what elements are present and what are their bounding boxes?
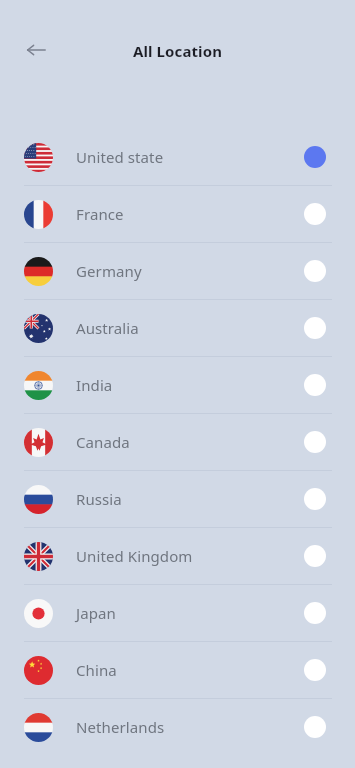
button[interactable]: Japan bbox=[0, 585, 355, 641]
staticText: Russia bbox=[76, 489, 304, 509]
staticText: All Location bbox=[0, 41, 355, 61]
button[interactable]: Canada bbox=[0, 414, 355, 470]
staticText: Japan bbox=[76, 603, 304, 623]
button[interactable]: Netherlands bbox=[0, 699, 355, 755]
staticText: France bbox=[76, 204, 304, 224]
button[interactable]: Russia bbox=[0, 471, 355, 527]
staticText: United Kingdom bbox=[76, 546, 304, 566]
button[interactable]: Germany bbox=[0, 243, 355, 299]
staticText: China bbox=[76, 660, 304, 680]
button[interactable]: Australia bbox=[0, 300, 355, 356]
button[interactable]: United Kingdom bbox=[0, 528, 355, 584]
staticText: Germany bbox=[76, 261, 304, 281]
button[interactable]: United state bbox=[0, 129, 355, 185]
staticText: India bbox=[76, 375, 304, 395]
staticText: Canada bbox=[76, 432, 304, 452]
button[interactable]: France bbox=[0, 186, 355, 242]
staticText: United state bbox=[76, 147, 304, 167]
staticText: Netherlands bbox=[76, 717, 304, 737]
button[interactable]: India bbox=[0, 357, 355, 413]
staticText: Australia bbox=[76, 318, 304, 338]
button[interactable]: China bbox=[0, 642, 355, 698]
button[interactable]: Back bbox=[20, 34, 52, 66]
